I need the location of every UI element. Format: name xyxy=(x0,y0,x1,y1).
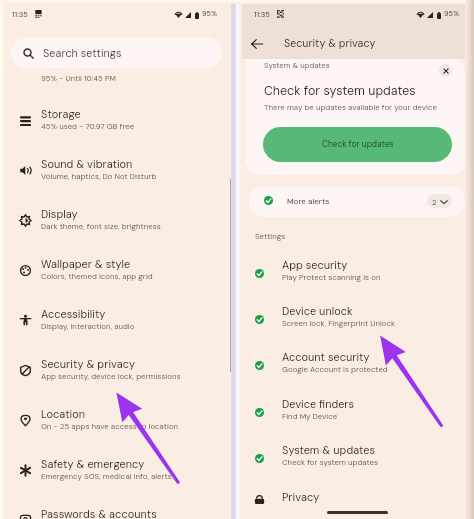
staticText: 11:35 xyxy=(254,9,270,19)
staticText: Security & privacy xyxy=(41,357,136,371)
button[interactable]: Privacy xyxy=(242,480,474,519)
staticText: Screen lock, Fingerprint Unlock xyxy=(282,318,395,328)
button[interactable]: Back xyxy=(243,30,271,58)
staticText: Device unlock xyxy=(282,304,353,318)
staticText: 2 xyxy=(432,197,437,207)
staticText: Emergency SOS, medical info, alerts xyxy=(41,471,172,481)
staticText: System & updates xyxy=(264,60,330,70)
staticText: There may be updates available for your … xyxy=(264,102,437,112)
staticText: Dark theme, font size, brightness xyxy=(41,221,161,231)
staticText: Security & privacy xyxy=(284,36,376,50)
button[interactable]: Device finders xyxy=(242,387,474,433)
staticText: 95% - Until 10:45 PM xyxy=(41,73,116,83)
staticText: 95% xyxy=(444,9,459,19)
staticText: Account security xyxy=(282,350,370,364)
staticText: Search settings xyxy=(43,46,122,60)
button[interactable]: System & updates xyxy=(242,433,474,479)
button[interactable]: Sound & vibration xyxy=(0,145,231,195)
staticText: 95% xyxy=(202,9,217,19)
staticText: System & updates xyxy=(282,443,375,457)
staticText: Accessibility xyxy=(41,307,106,321)
staticText: 11:35 xyxy=(12,9,28,19)
button[interactable]: Device unlock xyxy=(242,294,474,340)
button[interactable]: App security xyxy=(242,248,474,294)
staticText: App security, device lock, permissions xyxy=(41,371,181,381)
staticText: Wallpaper & style xyxy=(41,257,131,271)
button[interactable]: Location xyxy=(0,395,231,445)
staticText: More alerts xyxy=(287,196,330,206)
staticText: Play Protect scanning is on xyxy=(282,272,381,282)
staticText: Storage xyxy=(41,107,81,121)
button[interactable]: More alerts xyxy=(249,186,465,217)
staticText: App security xyxy=(282,258,348,272)
staticText: Location xyxy=(41,407,86,421)
staticText: Volume, haptics, Do Not Disturb xyxy=(41,171,157,181)
staticText: Settings xyxy=(255,231,286,241)
button[interactable]: Security & privacy xyxy=(0,345,231,395)
staticText: Safety & emergency xyxy=(41,457,145,471)
button[interactable]: Check for updates xyxy=(263,127,452,162)
button[interactable]: Safety & emergency xyxy=(0,445,231,495)
staticText: Display, interaction, audio xyxy=(41,321,135,331)
button[interactable]: Accessibility xyxy=(0,295,231,345)
button[interactable]: Account security xyxy=(242,340,474,386)
staticText: Check for updates xyxy=(322,139,394,150)
staticText: Passwords & accounts xyxy=(41,507,157,519)
button[interactable]: Passwords & accounts xyxy=(0,495,231,519)
staticText: On - 25 apps have access to location xyxy=(41,421,179,431)
staticText: Check for system updates xyxy=(282,457,378,467)
staticText: Sound & vibration xyxy=(41,157,133,171)
staticText: Device finders xyxy=(282,397,355,411)
button[interactable]: Search settings xyxy=(11,38,222,68)
staticText: Check for system updates xyxy=(264,83,416,99)
button[interactable]: Dismiss xyxy=(439,64,452,77)
staticText: Privacy xyxy=(282,490,320,504)
staticText: Display xyxy=(41,207,78,221)
button[interactable]: Wallpaper & style xyxy=(0,245,231,295)
button[interactable]: Display xyxy=(0,195,231,245)
staticText: Find My Device xyxy=(282,411,338,421)
staticText: Google Account is protected xyxy=(282,364,388,374)
button[interactable]: Storage xyxy=(0,95,231,145)
staticText: Colors, themed icons, app grid xyxy=(41,271,153,281)
staticText: 45% used - 70.97 GB free xyxy=(41,121,135,131)
